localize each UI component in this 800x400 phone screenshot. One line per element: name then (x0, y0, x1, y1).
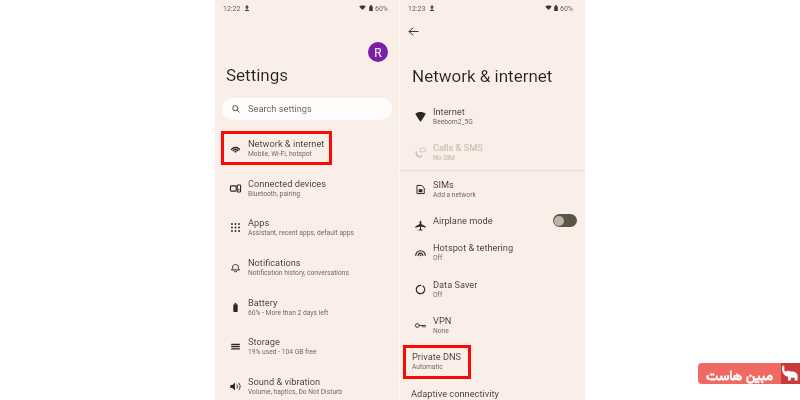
staticText: No SIM (433, 154, 455, 162)
button[interactable]: SIMs (399, 169, 585, 205)
staticText: 19% used - 104 GB free (248, 348, 317, 356)
staticText: Data Saver (433, 279, 478, 290)
button[interactable]: Account (368, 42, 388, 62)
button[interactable]: Notifications (214, 247, 399, 283)
staticText: Bluetooth, pairing (248, 190, 300, 198)
staticText: 60% (560, 5, 573, 13)
button[interactable]: Network & internet (214, 128, 399, 164)
staticText: Notifications (248, 257, 301, 268)
staticText: Off (433, 291, 443, 299)
staticText: SIMs (433, 179, 454, 190)
button[interactable]: Internet (399, 96, 585, 132)
button[interactable]: Hotspot & tethering (399, 232, 585, 268)
button[interactable]: Calls & SMS (399, 132, 585, 168)
button[interactable]: Airplane mode (399, 205, 585, 241)
button[interactable]: Back (403, 21, 423, 41)
staticText: Mobile, Wi-Fi, hotspot (248, 150, 312, 158)
staticText: Off (433, 254, 443, 262)
staticText: Private DNS (412, 351, 462, 362)
staticText: 12:22 (223, 5, 241, 13)
staticText: Search settings (248, 103, 312, 114)
staticText: Add a network (433, 191, 476, 199)
staticText: Settings (226, 65, 289, 85)
staticText: Network & internet (412, 66, 553, 86)
staticText: Volume, haptics, Do Not Disturb (248, 388, 343, 396)
staticText: Internet (433, 106, 465, 117)
button[interactable]: Storage (214, 326, 399, 362)
button[interactable]: Apps (214, 207, 399, 243)
staticText: Automatic (412, 363, 443, 371)
staticText: Assistant, recent apps, default apps (248, 229, 354, 237)
button[interactable]: Airplane mode toggle (553, 214, 577, 227)
button[interactable]: Data Saver (399, 269, 585, 305)
staticText: 60% - More than 2 days left (248, 309, 329, 317)
staticText: Beebom2_5G (433, 118, 473, 126)
staticText: Network & internet (248, 138, 325, 149)
staticText: Sound & vibration (248, 376, 321, 387)
staticText: R (374, 45, 382, 60)
staticText: 12:23 (408, 5, 426, 13)
button[interactable]: Connected devices (214, 168, 399, 204)
button[interactable]: Sound & vibration (214, 366, 399, 400)
button[interactable]: Private DNS (399, 341, 585, 377)
staticText: مبین هاست (700, 366, 779, 387)
staticText: VPN (433, 315, 452, 326)
staticText: Calls & SMS (433, 142, 483, 153)
staticText: Hotspot & tethering (433, 242, 514, 253)
staticText: Adaptive connectivity (411, 388, 499, 399)
staticText: Connected devices (248, 178, 327, 189)
button[interactable]: Adaptive connectivity (399, 378, 585, 400)
staticText: Storage (248, 336, 280, 347)
staticText: Notification history, conversations (248, 269, 349, 277)
button[interactable]: VPN (399, 305, 585, 341)
staticText: Apps (248, 217, 270, 228)
staticText: Airplane mode (433, 215, 493, 226)
staticText: Battery (248, 297, 278, 308)
button[interactable]: Battery (214, 287, 399, 323)
staticText: None (433, 327, 449, 335)
button[interactable]: Search settings (222, 98, 392, 120)
staticText: 60% (375, 5, 388, 13)
